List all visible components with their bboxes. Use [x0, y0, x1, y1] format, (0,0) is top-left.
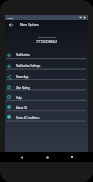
button[interactable]: Give Rating [5, 82, 88, 92]
staticText: 7773008662 [36, 39, 58, 44]
staticText: 12:07 [7, 16, 14, 19]
staticText: Mobile Number [38, 35, 56, 38]
staticText: More Options [20, 23, 39, 27]
staticText: About US [16, 106, 28, 109]
staticText: Give Rating [16, 86, 30, 89]
staticText: Terms & Conditions [16, 116, 40, 119]
button[interactable]: Recents [67, 152, 77, 162]
button[interactable]: Back [7, 21, 15, 29]
staticText: Notification Settings [16, 64, 41, 67]
staticText: Notification [16, 53, 30, 56]
button[interactable]: Share App [5, 71, 88, 82]
staticText: Share App [16, 75, 29, 78]
button[interactable]: Terms & Conditions [5, 112, 88, 122]
button[interactable]: About US [5, 102, 88, 112]
staticText: Help [16, 96, 22, 99]
button[interactable]: Help [5, 92, 88, 102]
button[interactable]: Home [42, 152, 52, 162]
button[interactable]: Back [16, 152, 26, 162]
button[interactable]: Notification Settings [5, 60, 88, 71]
button[interactable]: Notification [5, 49, 88, 60]
